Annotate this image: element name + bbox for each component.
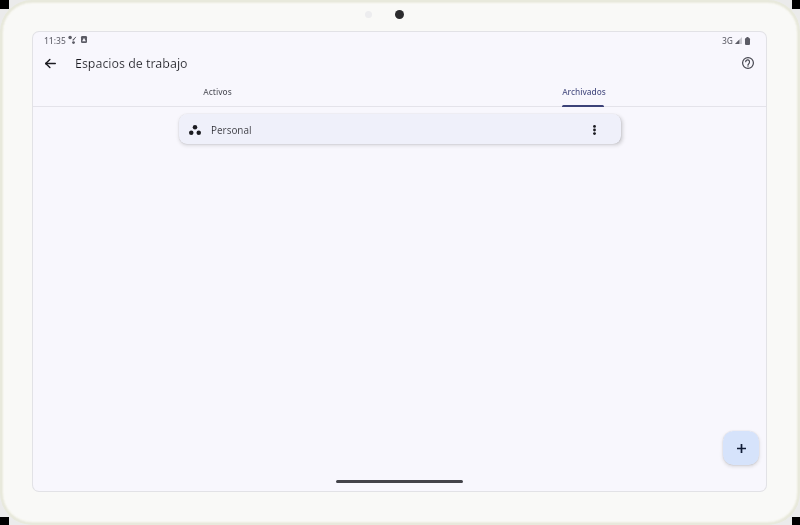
- button[interactable]: Personal: [179, 114, 621, 144]
- staticText: Espacios de trabajo: [75, 55, 188, 72]
- button[interactable]: More options: [582, 118, 606, 142]
- staticText: 3G: [722, 35, 734, 47]
- button[interactable]: Back: [36, 49, 64, 77]
- button[interactable]: Add workspace: [723, 431, 759, 465]
- staticText: Personal: [211, 123, 252, 136]
- staticText: 11:35: [44, 35, 66, 47]
- staticText: Archivados: [562, 86, 606, 97]
- staticText: Activos: [203, 86, 232, 97]
- button[interactable]: Help: [736, 51, 760, 75]
- button[interactable]: Activos: [33, 82, 399, 107]
- button[interactable]: Archivados: [399, 82, 766, 107]
